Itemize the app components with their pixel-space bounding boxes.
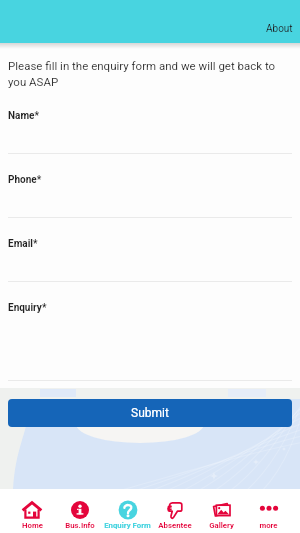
staticText: Email* [8, 238, 38, 250]
button[interactable]: Enquiry* [0, 302, 300, 381]
staticText: Phone* [8, 174, 42, 186]
button[interactable]: About [259, 18, 300, 43]
staticText: Gallery [209, 521, 234, 530]
staticText: Submit [131, 406, 169, 420]
button[interactable]: Email* [0, 238, 300, 282]
staticText: Enquiry* [8, 302, 47, 314]
button[interactable]: more [245, 489, 292, 530]
button[interactable]: Bus.Info [56, 489, 104, 530]
staticText: About [266, 23, 293, 35]
staticText: Home [22, 521, 43, 530]
button[interactable]: Home [8, 489, 56, 530]
staticText: Enquiry Form [104, 521, 151, 530]
staticText: Bus.Info [65, 521, 95, 530]
staticText: Absentee [158, 521, 192, 530]
button[interactable]: Gallery [198, 489, 245, 530]
button[interactable]: Absentee [151, 489, 198, 530]
staticText: Please fill in the enquiry form and we w… [8, 59, 290, 89]
button[interactable]: Submit [8, 399, 292, 427]
button[interactable]: Enquiry Form [104, 489, 151, 530]
button[interactable]: Name* [0, 110, 300, 154]
button[interactable]: Phone* [0, 174, 300, 218]
staticText: more [259, 521, 278, 530]
staticText: Name* [8, 110, 40, 122]
